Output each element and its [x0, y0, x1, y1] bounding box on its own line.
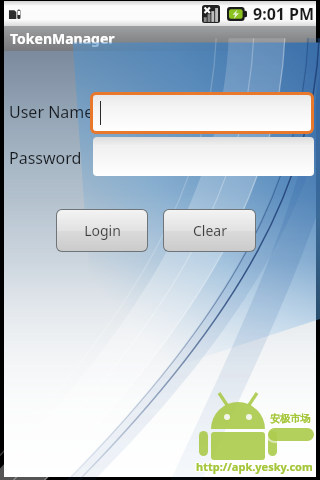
button[interactable]: Clear: [164, 210, 255, 251]
staticText: http://apk.yesky.com: [197, 458, 314, 473]
button[interactable]: [93, 95, 311, 131]
staticText: 9:01 PM: [253, 3, 315, 25]
button[interactable]: Login: [57, 210, 147, 251]
staticText: 安极市场: [271, 413, 311, 426]
staticText: 安极市场: [270, 413, 310, 426]
staticText: Clear: [193, 221, 227, 240]
button[interactable]: Storage notification: [8, 6, 24, 22]
staticText: http://apk.yesky.com: [196, 458, 313, 473]
staticText: TokenManager: [10, 29, 115, 48]
staticText: 安极市场: [269, 412, 309, 425]
staticText: Password: [9, 147, 82, 169]
staticText: http://apk.yesky.com: [195, 459, 312, 474]
staticText: 安极市场: [270, 411, 310, 424]
staticText: http://apk.yesky.com: [196, 460, 313, 475]
staticText: Login: [84, 221, 121, 240]
staticText: http://apk.yesky.com: [195, 460, 312, 475]
staticText: 安极市场: [271, 412, 311, 425]
staticText: User Name: [9, 101, 94, 123]
button[interactable]: [93, 137, 314, 176]
staticText: 安极市场: [270, 412, 310, 425]
staticText: http://apk.yesky.com: [196, 459, 313, 474]
staticText: 安极市场: [269, 413, 309, 426]
staticText: http://apk.yesky.com: [195, 458, 312, 473]
staticText: 安极市场: [271, 411, 311, 424]
staticText: http://apk.yesky.com: [197, 460, 314, 475]
staticText: http://apk.yesky.com: [197, 459, 314, 474]
staticText: 安极市场: [269, 411, 309, 424]
